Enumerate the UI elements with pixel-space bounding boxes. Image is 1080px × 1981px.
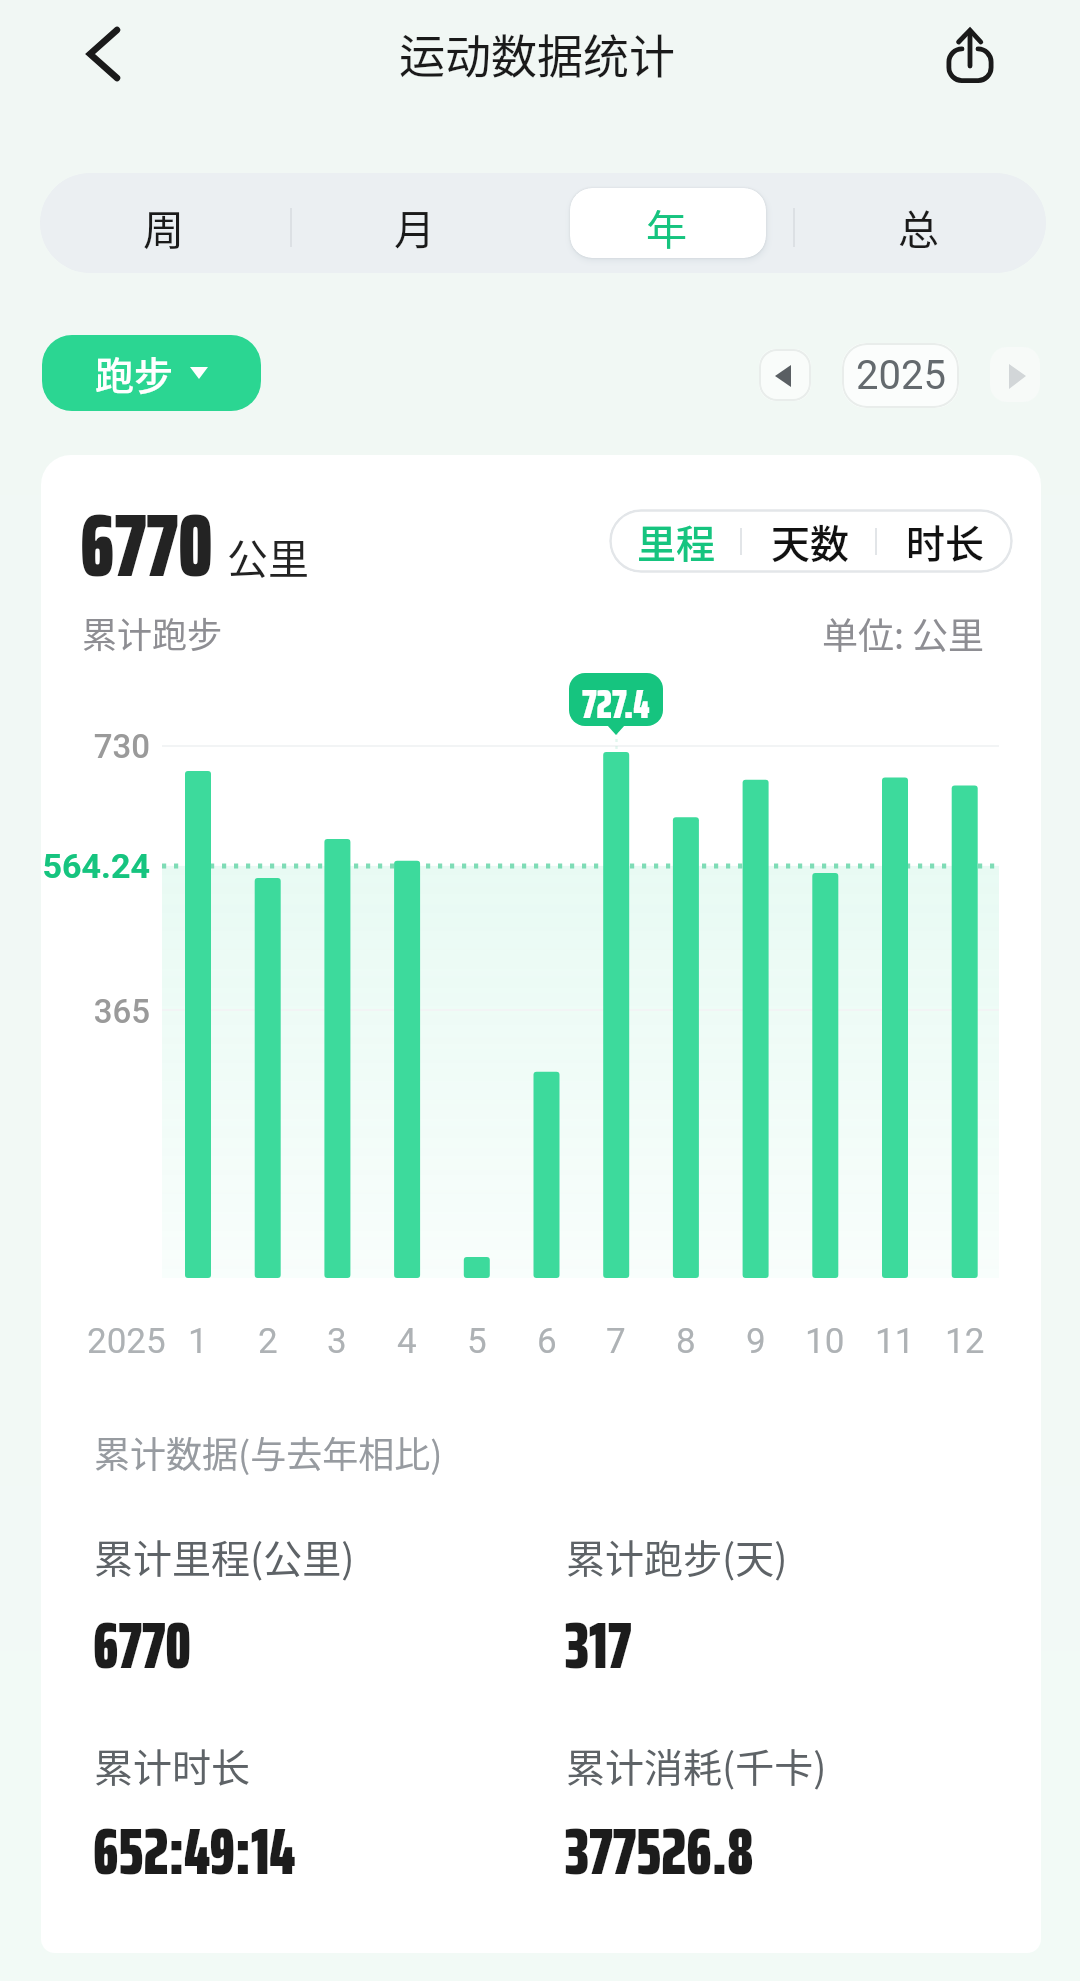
- staticText: 累计里程(公里): [94, 1528, 355, 1584]
- staticText: 2: [258, 1321, 278, 1362]
- staticText: 6770: [93, 1594, 192, 1696]
- staticText: 时长: [906, 513, 985, 569]
- staticText: 累计消耗(千卡): [566, 1737, 827, 1793]
- button[interactable]: 周: [40, 173, 291, 273]
- staticText: 4: [397, 1321, 417, 1362]
- staticText: 单位: 公里: [822, 607, 985, 659]
- button[interactable]: 天数: [743, 509, 878, 573]
- staticText: 652:49:14: [93, 1800, 296, 1902]
- button[interactable]: 月: [291, 173, 542, 273]
- staticText: 564.24: [42, 846, 150, 886]
- button[interactable]: 年: [542, 173, 794, 273]
- button[interactable]: 时长: [878, 509, 1013, 573]
- staticText: 总: [898, 197, 939, 256]
- staticText: 累计跑步(天): [566, 1528, 788, 1584]
- staticText: 317: [565, 1594, 632, 1696]
- staticText: 运动数据统计: [399, 20, 675, 87]
- staticText: 5: [467, 1321, 487, 1362]
- staticText: 年: [646, 197, 687, 256]
- button[interactable]: Previous year: [759, 349, 811, 401]
- button[interactable]: 跑步: [42, 335, 261, 411]
- button[interactable]: 总: [794, 173, 1046, 273]
- staticText: 2025: [87, 1321, 166, 1362]
- staticText: 跑步: [95, 345, 174, 401]
- button[interactable]: Share: [926, 6, 1014, 94]
- staticText: 月: [394, 197, 435, 256]
- staticText: 里程: [637, 513, 716, 569]
- staticText: 周: [143, 197, 184, 256]
- button[interactable]: 里程: [609, 509, 743, 573]
- staticText: 727.4: [582, 673, 650, 726]
- staticText: 1: [188, 1321, 208, 1362]
- staticText: 天数: [771, 513, 850, 569]
- staticText: 公里: [227, 526, 309, 585]
- staticText: 2025: [856, 352, 946, 399]
- staticText: 730: [93, 727, 150, 766]
- staticText: 7: [606, 1321, 626, 1362]
- staticText: 9: [746, 1321, 766, 1362]
- staticText: 12: [945, 1321, 985, 1362]
- button[interactable]: 2025: [842, 343, 959, 408]
- staticText: 3: [327, 1321, 347, 1362]
- staticText: 6770: [80, 476, 213, 615]
- staticText: 8: [676, 1321, 696, 1362]
- button[interactable]: Back: [60, 8, 148, 96]
- staticText: 累计跑步: [82, 607, 223, 658]
- button[interactable]: Next year: [990, 347, 1040, 402]
- staticText: 365: [93, 992, 150, 1031]
- staticText: 10: [805, 1321, 845, 1362]
- staticText: 累计时长: [94, 1737, 251, 1793]
- staticText: 6: [537, 1321, 557, 1362]
- staticText: 累计数据(与去年相比): [94, 1426, 443, 1478]
- staticText: 11: [875, 1321, 915, 1362]
- staticText: 377526.8: [565, 1800, 754, 1902]
